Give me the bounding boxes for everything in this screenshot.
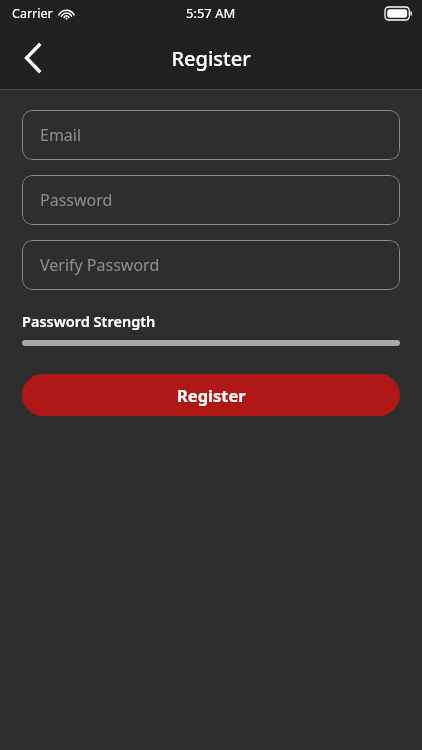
staticText: Carrier [12, 5, 53, 22]
button[interactable]: Password [22, 175, 400, 225]
staticText: Password Strength [22, 311, 156, 331]
staticText: Register [171, 45, 251, 72]
button[interactable]: Verify Password [22, 240, 400, 290]
staticText: Verify Password [40, 254, 160, 276]
button[interactable]: Email [22, 110, 400, 160]
staticText: Password [40, 189, 113, 211]
button[interactable]: Back [10, 35, 56, 81]
staticText: Register [177, 384, 246, 406]
button[interactable]: Register [22, 374, 400, 416]
staticText: 5:57 AM [186, 4, 236, 22]
staticText: Email [40, 124, 82, 146]
